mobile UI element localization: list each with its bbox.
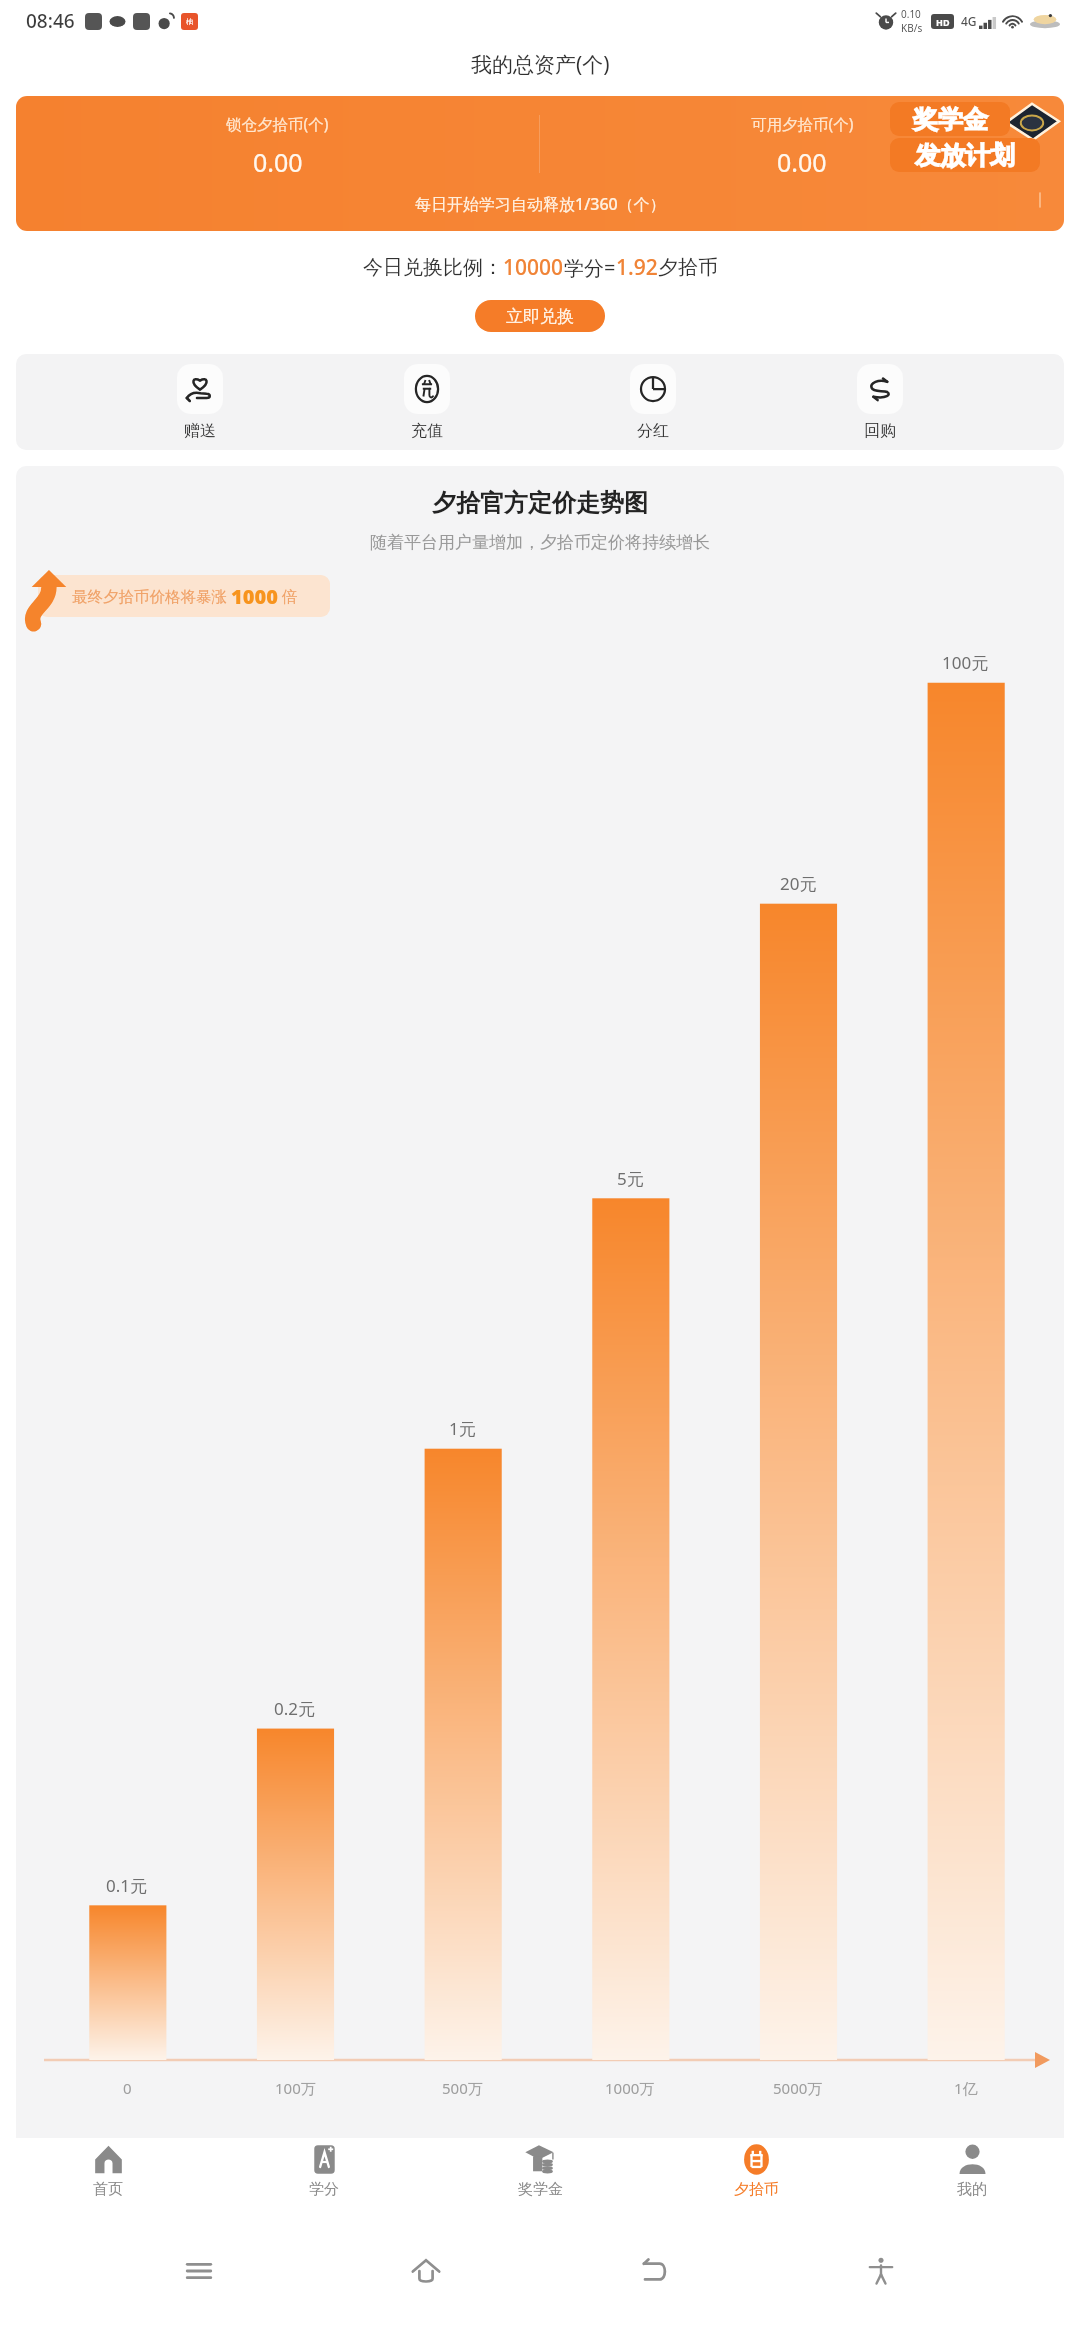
staticText: 1元 bbox=[449, 1417, 476, 1440]
staticText: 立即兑换 bbox=[506, 306, 574, 327]
staticText: 首页 bbox=[93, 2180, 123, 2199]
staticText: 夕拾官方定价走势图 bbox=[432, 488, 648, 518]
staticText: 奖学金 bbox=[518, 2180, 563, 2199]
staticText: 5元 bbox=[617, 1167, 644, 1190]
button[interactable]: 首页 bbox=[0, 2138, 216, 2234]
staticText: 锁仓夕拾币(个) bbox=[226, 113, 329, 134]
staticText: 1亿 bbox=[954, 2078, 978, 2098]
staticText: 0.10 bbox=[901, 7, 921, 21]
staticText: 赠送 bbox=[184, 421, 216, 441]
staticText: 今日兑换比例： bbox=[363, 255, 503, 280]
staticText: 夕拾币 bbox=[658, 255, 718, 280]
staticText: 发放计划 bbox=[915, 140, 1015, 171]
staticText: 100万 bbox=[275, 2078, 316, 2098]
staticText: 倍 bbox=[282, 587, 298, 607]
button[interactable]: 奖学金 bbox=[432, 2138, 648, 2234]
staticText: KB/s bbox=[901, 21, 923, 35]
button[interactable]: Recent apps bbox=[170, 2242, 228, 2300]
button[interactable]: 锁仓夕拾币(个) bbox=[16, 96, 1064, 231]
button[interactable]: Back bbox=[625, 2242, 683, 2300]
button[interactable]: 分红 bbox=[611, 364, 695, 441]
staticText: 奖学金 bbox=[913, 104, 988, 135]
staticText: 100元 bbox=[942, 651, 989, 674]
staticText: 最终夕拾币价格将暴涨 bbox=[72, 587, 227, 607]
staticText: 1.92 bbox=[616, 253, 658, 282]
staticText: 随着平台用户量增加，夕拾币定价将持续增长 bbox=[370, 532, 710, 553]
staticText: 分红 bbox=[637, 421, 669, 441]
button[interactable]: 我的 bbox=[864, 2138, 1080, 2234]
button[interactable]: 赠送 bbox=[158, 364, 242, 441]
staticText: 1000万 bbox=[605, 2078, 655, 2098]
staticText: 0.00 bbox=[777, 145, 827, 175]
staticText: 充值 bbox=[411, 421, 443, 441]
button[interactable]: Accessibility bbox=[852, 2242, 910, 2300]
staticText: 可用夕拾币(个) bbox=[751, 113, 854, 134]
staticText: HD bbox=[936, 16, 950, 28]
button[interactable]: 立即兑换 bbox=[475, 300, 605, 332]
staticText: 我的 bbox=[957, 2180, 987, 2199]
staticText: 4G bbox=[961, 13, 977, 29]
staticText: 夕拾币 bbox=[734, 2180, 779, 2199]
staticText: 学分= bbox=[564, 254, 616, 281]
button[interactable]: 学分 bbox=[216, 2138, 432, 2234]
staticText: 20元 bbox=[780, 872, 817, 895]
button[interactable]: 夕拾币 bbox=[648, 2138, 864, 2234]
staticText: 我的总资产(个) bbox=[471, 50, 610, 79]
staticText: 0.00 bbox=[253, 145, 303, 175]
button[interactable]: 回购 bbox=[838, 364, 922, 441]
staticText: 每日开始学习自动释放1/360（个） bbox=[415, 193, 666, 215]
staticText: 回购 bbox=[864, 421, 896, 441]
button[interactable]: Home bbox=[397, 2242, 455, 2300]
staticText: 1000 bbox=[231, 583, 278, 610]
staticText: 学分 bbox=[309, 2180, 339, 2199]
staticText: 08:46 bbox=[26, 8, 75, 34]
staticText: 500万 bbox=[442, 2078, 483, 2098]
staticText: 0.2元 bbox=[274, 1697, 316, 1720]
staticText: 0 bbox=[123, 2078, 132, 2098]
staticText: 柚 bbox=[186, 17, 193, 26]
button[interactable]: 充值 bbox=[385, 364, 469, 441]
staticText: 0.1元 bbox=[106, 1874, 148, 1897]
staticText: 10000 bbox=[503, 253, 564, 282]
staticText: 5000万 bbox=[773, 2078, 823, 2098]
